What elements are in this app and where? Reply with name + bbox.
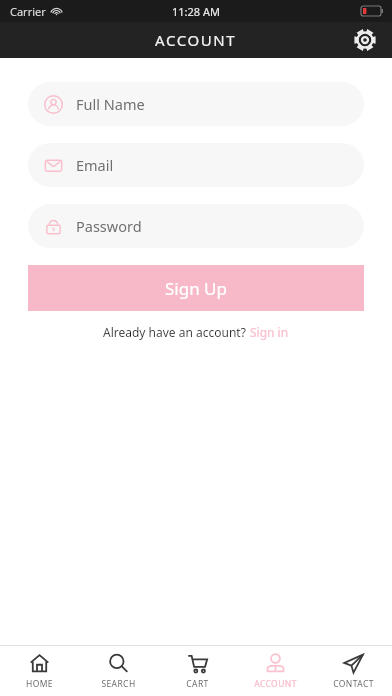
staticText: Already have an account? [103, 324, 250, 340]
button[interactable]: CART [158, 646, 236, 696]
button[interactable]: Full Name [28, 82, 364, 126]
staticText: SEARCH [101, 678, 136, 690]
staticText: Carrier [10, 4, 46, 19]
staticText: Full Name [76, 94, 145, 114]
staticText: ACCOUNT [155, 30, 237, 50]
staticText: Password [76, 216, 142, 236]
button[interactable]: Settings [350, 25, 380, 55]
button[interactable]: SEARCH [79, 646, 158, 696]
staticText: HOME [26, 678, 53, 690]
staticText: CART [186, 678, 209, 690]
button[interactable]: Password [28, 204, 364, 248]
button[interactable]: Email [28, 143, 364, 187]
staticText: CONTACT [333, 678, 374, 690]
button[interactable]: CONTACT [314, 646, 392, 696]
staticText: 11:28 AM [172, 4, 220, 19]
button[interactable]: ACCOUNT [236, 646, 314, 696]
button[interactable]: Sign Up [28, 265, 364, 311]
staticText: Email [76, 155, 114, 175]
staticText: ACCOUNT [254, 678, 297, 690]
staticText: Sign in [250, 324, 289, 340]
button[interactable]: HOME [0, 646, 79, 696]
button[interactable]: Sign in [250, 324, 289, 340]
staticText: Sign Up [165, 277, 227, 300]
